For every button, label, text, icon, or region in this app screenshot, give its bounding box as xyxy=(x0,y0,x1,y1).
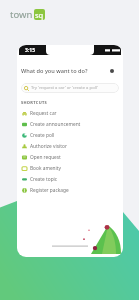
staticText: Try 'request a car' or 'create a poll' xyxy=(31,85,98,91)
button[interactable]: Register package xyxy=(17,185,123,196)
staticText: SHORTCUTS xyxy=(21,100,48,105)
staticText: Register package xyxy=(30,187,69,194)
button[interactable]: Request car xyxy=(17,108,123,119)
button[interactable]: Try 'request a car' or 'create a poll' xyxy=(21,83,119,93)
button[interactable]: Create topic xyxy=(17,174,123,185)
staticText: Request car xyxy=(30,110,57,117)
staticText: What do you want to do? xyxy=(21,67,88,75)
staticText: Create poll xyxy=(30,132,55,139)
staticText: town xyxy=(10,8,33,20)
staticText: 3:15 xyxy=(25,47,35,54)
staticText: sq xyxy=(35,10,44,20)
staticText: Authorize visitor xyxy=(30,143,67,150)
button[interactable]: Authorize visitor xyxy=(17,141,123,152)
button[interactable]: Open request xyxy=(17,152,123,163)
staticText: Book amenity xyxy=(30,165,61,172)
staticText: Open request xyxy=(30,154,61,161)
button[interactable]: Close xyxy=(107,66,117,76)
staticText: Create announcement xyxy=(30,121,81,128)
staticText: Create topic xyxy=(30,176,58,183)
button[interactable]: Create poll xyxy=(17,130,123,141)
button[interactable]: Create announcement xyxy=(17,119,123,130)
button[interactable]: Book amenity xyxy=(17,163,123,174)
